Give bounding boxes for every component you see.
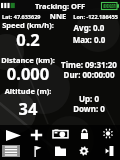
staticText: 34 [0,97,58,119]
button[interactable]: Lock screen [72,126,96,142]
staticText: Lon: -122.186455 [55,13,118,20]
button[interactable]: Brightness [96,125,120,141]
button[interactable]: Add waypoint [24,127,48,143]
button[interactable]: Flag [25,143,49,159]
button[interactable]: Battery [101,2,119,10]
staticText: Altitude (m): [0,86,58,96]
staticText: Up: 0 [58,93,120,104]
button[interactable]: Exit [97,143,120,159]
staticText: Lat: 47.633629 [2,13,41,20]
staticText: Dur: 00:00:00 [58,69,120,80]
button[interactable]: Menu [0,143,23,159]
staticText: Max: 0.0 [58,34,120,45]
staticText: Time: 09:31:20 [58,59,120,70]
staticText: NNE [43,11,73,21]
staticText: Speed (km/h): [0,20,58,30]
staticText: 100% [102,3,116,10]
staticText: Avg: 0.0 [58,22,120,33]
staticText: 0.2 [0,28,58,50]
staticText: 0.000 [0,62,58,84]
button[interactable]: Files [48,143,72,159]
staticText: Distance (km): [0,55,58,65]
staticText: Down: 0 [58,103,120,114]
staticText: Tracking: OFF [20,1,100,11]
button[interactable]: Start tracking [1,127,25,143]
button[interactable]: Settings [72,143,96,159]
button[interactable]: GPS signal [0,1,16,10]
button[interactable]: Camera [48,126,72,142]
